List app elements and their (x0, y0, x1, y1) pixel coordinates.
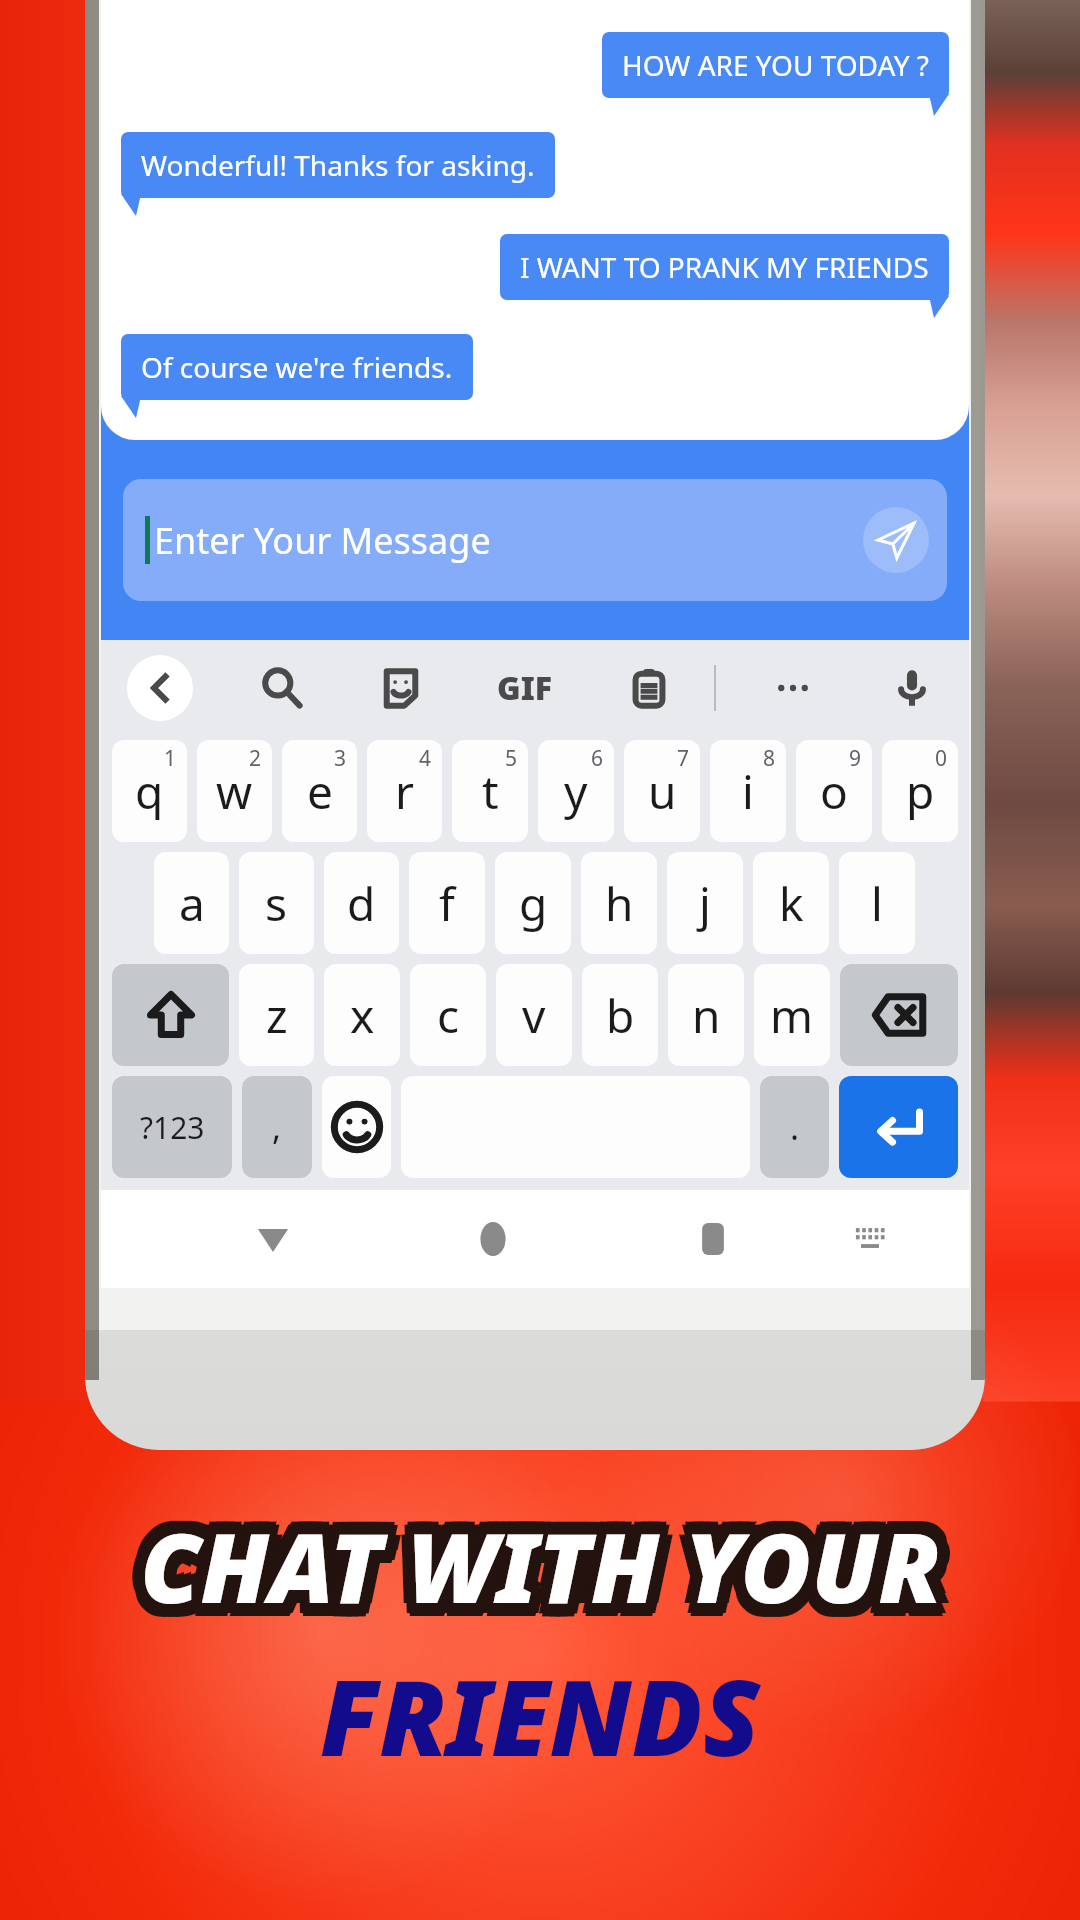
staticText: 9 (849, 744, 862, 773)
staticText: 3 (334, 744, 347, 773)
button[interactable]: p (882, 740, 958, 842)
staticText: k (779, 872, 804, 935)
staticText: CHAT WITH YOUR (150, 1490, 951, 1621)
staticText: FRIENDS (320, 1645, 760, 1787)
staticText: q (135, 760, 164, 823)
staticText: h (605, 872, 634, 935)
button[interactable]: z (239, 964, 314, 1066)
staticText: o (820, 760, 848, 823)
button[interactable]: Clipboard (618, 657, 680, 719)
staticText: Enter Your Message (154, 516, 491, 565)
staticText: w (216, 760, 253, 823)
staticText: CHAT WITH YOUR (150, 1510, 951, 1641)
button[interactable]: l (839, 852, 915, 954)
button[interactable]: c (410, 964, 486, 1066)
button[interactable]: Back (238, 1204, 308, 1274)
staticText: p (906, 760, 935, 823)
staticText: CHAT WITH YOUR (140, 1513, 941, 1644)
staticText: 7 (677, 744, 690, 773)
button[interactable]: Send (863, 507, 929, 573)
button[interactable]: GIF (489, 658, 561, 718)
button[interactable]: ?123 (112, 1076, 232, 1178)
staticText: CHAT WITH YOUR (140, 1487, 941, 1618)
button[interactable]: Back (127, 655, 193, 721)
button[interactable]: Search (251, 657, 313, 719)
staticText: ?123 (140, 1107, 205, 1148)
button[interactable]: Stickers (370, 657, 432, 719)
staticText: d (347, 872, 376, 935)
button[interactable]: a (154, 852, 229, 954)
staticText: Wonderful! Thanks for asking. (141, 146, 535, 184)
button[interactable]: m (754, 964, 830, 1066)
button[interactable]: e (282, 740, 357, 842)
staticText: y (564, 760, 588, 823)
button[interactable]: s (239, 852, 314, 954)
staticText: CHAT WITH YOUR (133, 1487, 934, 1618)
button[interactable]: Voice input (881, 657, 943, 719)
button[interactable]: Wonderful! Thanks for asking. (121, 132, 555, 198)
staticText: CHAT WITH YOUR (130, 1510, 931, 1641)
staticText: x (350, 984, 375, 1047)
button[interactable]: h (581, 852, 657, 954)
staticText: 4 (419, 744, 432, 773)
staticText: GIF (497, 666, 553, 710)
staticText: CHAT WITH YOUR (153, 1500, 954, 1631)
staticText: Of course we're friends. (141, 348, 453, 386)
button[interactable]: o (796, 740, 872, 842)
button[interactable]: f (409, 852, 485, 954)
button[interactable]: Emoji (322, 1076, 391, 1178)
button[interactable]: q (112, 740, 187, 842)
staticText: CHAT WITH YOUR (127, 1500, 928, 1631)
staticText: 6 (591, 744, 604, 773)
staticText: t (482, 760, 499, 823)
button[interactable]: w (197, 740, 272, 842)
staticText: 2 (249, 744, 262, 773)
staticText: CHAT WITH YOUR (133, 1513, 934, 1644)
staticText: e (307, 760, 333, 823)
staticText: . (790, 1104, 800, 1150)
staticText: g (519, 872, 548, 935)
button[interactable]: Enter (839, 1076, 958, 1178)
button[interactable]: i (710, 740, 786, 842)
staticText: a (179, 872, 205, 935)
staticText: CHAT WITH YOUR (147, 1487, 948, 1618)
staticText: i (742, 760, 754, 823)
staticText: 8 (763, 744, 776, 773)
button[interactable]: j (667, 852, 743, 954)
button[interactable]: Hide keyboard (840, 1209, 900, 1269)
staticText: I WANT TO PRANK MY FRIENDS (520, 248, 929, 286)
button[interactable]: . (760, 1076, 829, 1178)
button[interactable]: Home (458, 1204, 528, 1274)
button[interactable]: y (538, 740, 614, 842)
staticText: u (648, 760, 677, 823)
staticText: l (871, 872, 883, 935)
button[interactable]: Of course we're friends. (121, 334, 473, 400)
button[interactable]: HOW ARE YOU TODAY ? (602, 32, 949, 98)
button[interactable]: Recent apps (678, 1204, 748, 1274)
button[interactable]: Shift (112, 964, 229, 1066)
staticText: s (265, 872, 288, 935)
button[interactable]: , (242, 1076, 312, 1178)
button[interactable]: Backspace (840, 964, 958, 1066)
button[interactable]: t (452, 740, 528, 842)
button[interactable]: g (495, 852, 571, 954)
staticText: 5 (505, 744, 518, 773)
button[interactable]: n (668, 964, 744, 1066)
staticText: c (437, 984, 460, 1047)
staticText: r (395, 760, 414, 823)
button[interactable]: x (324, 964, 400, 1066)
button[interactable]: b (582, 964, 658, 1066)
button[interactable]: More options (762, 657, 824, 719)
button[interactable]: v (496, 964, 572, 1066)
button[interactable]: Enter Your Message (123, 479, 947, 601)
button[interactable]: k (753, 852, 829, 954)
button[interactable]: u (624, 740, 700, 842)
staticText: , (272, 1104, 282, 1150)
button[interactable]: r (367, 740, 442, 842)
staticText: j (699, 872, 711, 935)
staticText: 0 (935, 744, 948, 773)
button[interactable]: I WANT TO PRANK MY FRIENDS (500, 234, 949, 300)
staticText: 1 (164, 744, 177, 773)
button[interactable]: d (324, 852, 399, 954)
